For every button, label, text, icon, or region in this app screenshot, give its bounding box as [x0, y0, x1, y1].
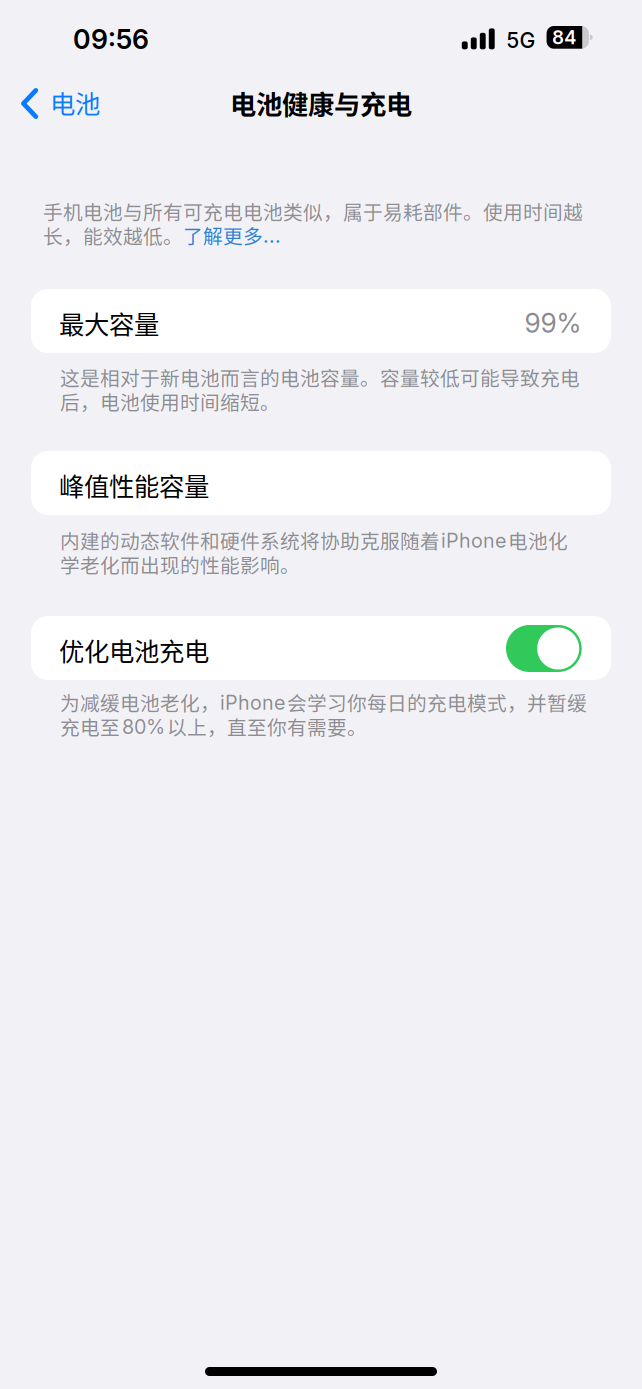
- button[interactable]: 优化电池充电: [31, 616, 611, 680]
- staticText: 电池健康与充电: [230, 84, 412, 122]
- staticText: 5G: [506, 27, 535, 53]
- staticText: 优化电池充电: [59, 631, 209, 668]
- staticText: 这是相对于新电池而言的电池容量。容量较低可能导致充电 后，电池使用时间缩短。: [60, 365, 580, 413]
- button[interactable]: 峰值性能容量: [31, 451, 611, 515]
- staticText: 09:56: [73, 23, 149, 55]
- button[interactable]: 最大容量: [31, 289, 611, 353]
- staticText: 99%: [524, 307, 581, 339]
- staticText: 电池: [50, 84, 100, 121]
- staticText: 了解更多...: [183, 223, 281, 247]
- staticText: 84: [552, 26, 577, 49]
- staticText: 最大容量: [59, 304, 159, 341]
- staticText: 为减缓电池老化，iPhone 会学习你每日的充电模式，并暂缓 充电至 80% 以…: [60, 690, 587, 738]
- staticText: 内建的动态软件和硬件系统将协助克服随着 iPhone 电池化 学老化而出现的性能…: [60, 528, 568, 576]
- button[interactable]: 电池: [0, 81, 120, 127]
- staticText: 手机电池与所有可充电电池类似，属于易耗部件。使用时间越 长，能效越低。: [43, 199, 583, 247]
- staticText: 峰值性能容量: [59, 466, 209, 503]
